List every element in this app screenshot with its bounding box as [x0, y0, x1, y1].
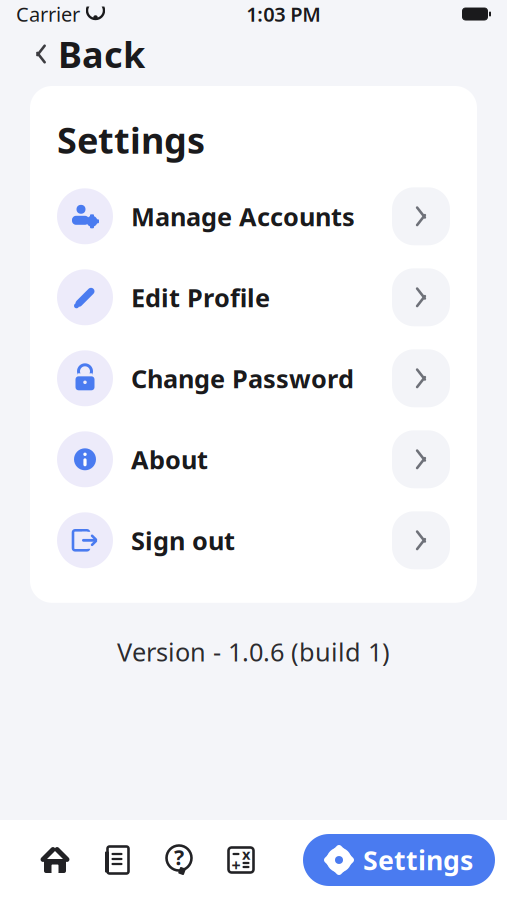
- button[interactable]: Change Password: [30, 338, 477, 419]
- button[interactable]: Transactions: [86, 829, 148, 891]
- button[interactable]: Settings: [303, 834, 495, 886]
- staticText: About: [131, 442, 208, 476]
- staticText: +: [231, 854, 240, 876]
- staticText: Edit Profile: [131, 280, 270, 314]
- button[interactable]: Sign out: [30, 500, 477, 581]
- button[interactable]: Calculator: [210, 829, 272, 891]
- staticText: ?: [174, 843, 184, 871]
- staticText: Version - 1.0.6 (build 1): [117, 635, 390, 668]
- staticText: 1:03 PM: [246, 1, 321, 27]
- staticText: x: [242, 844, 250, 864]
- staticText: Carrier: [16, 1, 80, 27]
- button[interactable]: Help: [148, 829, 210, 891]
- button[interactable]: Manage Accounts: [30, 176, 477, 257]
- staticText: Settings: [57, 116, 205, 164]
- button[interactable]: Home: [24, 829, 86, 891]
- staticText: Sign out: [131, 523, 235, 557]
- staticText: Settings: [363, 842, 473, 878]
- staticText: Manage Accounts: [131, 199, 355, 233]
- button[interactable]: About: [30, 419, 477, 500]
- button[interactable]: Edit Profile: [30, 257, 477, 338]
- button[interactable]: Back: [20, 22, 159, 86]
- staticText: Change Password: [131, 361, 354, 395]
- staticText: Back: [58, 30, 145, 78]
